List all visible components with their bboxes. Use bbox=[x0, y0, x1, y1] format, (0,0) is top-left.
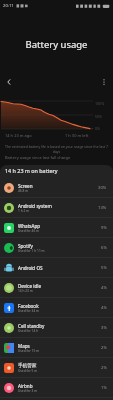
staticText: Used for 46 m bbox=[18, 229, 40, 233]
staticText: 9% bbox=[101, 225, 107, 231]
staticText: Battery usage bbox=[0, 38, 113, 51]
staticText: Screen bbox=[18, 183, 33, 189]
button[interactable]: Facebook bbox=[0, 298, 113, 318]
staticText: 13% bbox=[98, 205, 107, 211]
staticText: 50% bbox=[95, 114, 103, 119]
staticText: Used for 3 m bbox=[18, 389, 38, 393]
staticText: 2% bbox=[101, 345, 107, 351]
button[interactable]: Android system bbox=[0, 198, 113, 218]
staticText: 100% bbox=[95, 101, 105, 106]
staticText: 4% bbox=[101, 285, 107, 291]
staticText: Facebook bbox=[18, 303, 39, 309]
button[interactable]: Maps bbox=[0, 338, 113, 358]
staticText: WhatsApp bbox=[18, 223, 41, 229]
staticText: Android system bbox=[18, 203, 52, 209]
staticText: 5% bbox=[101, 265, 107, 271]
staticText: 2% bbox=[101, 365, 107, 371]
button[interactable]: Back bbox=[2, 75, 16, 89]
staticText: 6% bbox=[101, 245, 107, 251]
staticText: 14 h 23 m bbox=[18, 289, 33, 293]
button[interactable]: Screen bbox=[0, 178, 113, 198]
staticText: Spotify bbox=[18, 243, 33, 249]
button[interactable]: WhatsApp bbox=[0, 218, 113, 238]
button[interactable]: Android OS bbox=[0, 258, 113, 278]
staticText: 手机管家 bbox=[18, 363, 37, 369]
staticText: Used for 1 h 11 m bbox=[18, 249, 45, 253]
staticText: Used for 34 m bbox=[18, 309, 40, 313]
button[interactable]: Spotify bbox=[0, 238, 113, 258]
staticText: 0% bbox=[95, 126, 101, 131]
staticText: 1% bbox=[101, 385, 107, 391]
staticText: The estimated battery life is based on y… bbox=[5, 144, 108, 154]
staticText: Battery usage since last full charge bbox=[5, 155, 71, 160]
staticText: 20:11 bbox=[3, 3, 14, 9]
staticText: 30% bbox=[98, 185, 107, 191]
staticText: Device idle bbox=[18, 283, 42, 289]
button[interactable]: Device idle bbox=[0, 278, 113, 298]
staticText: Cell standby bbox=[18, 323, 45, 329]
staticText: Used for 15 m bbox=[18, 349, 40, 353]
button[interactable]: Airbnb bbox=[0, 378, 113, 398]
staticText: Android OS bbox=[18, 265, 43, 271]
staticText: Maps bbox=[18, 343, 30, 349]
button[interactable]: Cell standby bbox=[0, 318, 113, 338]
staticText: Used for 5 m bbox=[18, 369, 38, 373]
staticText: Airbnb bbox=[18, 383, 33, 389]
staticText: 3% bbox=[101, 325, 107, 331]
staticText: 46.8 m bbox=[18, 189, 29, 193]
staticText: 4% bbox=[101, 305, 107, 311]
staticText: 1 h 30 m left bbox=[65, 133, 89, 138]
button[interactable]: 手机管家 bbox=[0, 358, 113, 378]
staticText: Used for 14 h bbox=[18, 329, 39, 333]
staticText: 1 h 2 m bbox=[18, 209, 30, 213]
staticText: 14 h 23 m on battery bbox=[5, 167, 58, 174]
button[interactable]: More options bbox=[97, 75, 111, 89]
staticText: 14 h 23 m ago bbox=[5, 133, 32, 138]
